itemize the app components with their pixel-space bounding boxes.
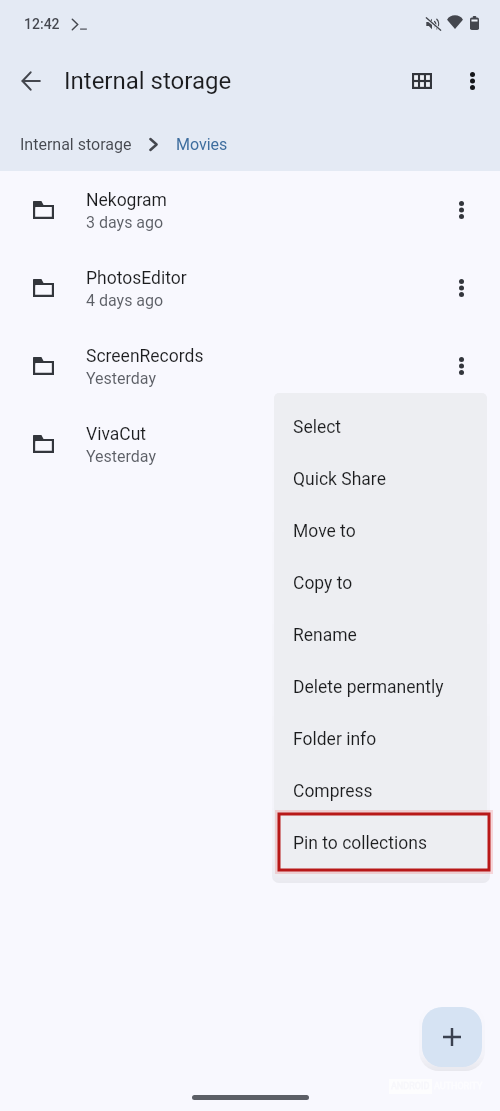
button[interactable]: Internal storage: [20, 135, 132, 154]
button[interactable]: Movies: [176, 135, 228, 154]
staticText: ScreenRecords: [86, 346, 204, 367]
button[interactable]: PhotosEditor: [0, 249, 500, 327]
staticText: 3 days ago: [86, 213, 164, 232]
button[interactable]: Add: [422, 1007, 482, 1067]
staticText: Compress: [293, 781, 373, 802]
button[interactable]: Copy to: [274, 557, 487, 609]
staticText: Quick Share: [293, 469, 386, 490]
staticText: VivaCut: [86, 424, 147, 445]
button[interactable]: Rename: [274, 609, 487, 661]
staticText: Delete permanently: [293, 677, 444, 698]
staticText: Rename: [293, 625, 357, 646]
button[interactable]: More options: [438, 187, 484, 233]
button[interactable]: Compress: [274, 765, 487, 817]
staticText: Yesterday: [86, 369, 157, 388]
staticText: Nekogram: [86, 190, 167, 211]
button[interactable]: Move to: [274, 505, 487, 557]
staticText: Internal storage: [64, 67, 232, 95]
staticText: 4 days ago: [86, 291, 164, 310]
staticText: Internal storage: [20, 135, 132, 154]
button[interactable]: Select: [274, 401, 487, 453]
staticText: PhotosEditor: [86, 268, 187, 289]
staticText: Movies: [176, 135, 228, 154]
button[interactable]: VivaCut: [0, 405, 500, 483]
staticText: 12:42: [24, 16, 60, 32]
staticText: Pin to collections: [293, 833, 427, 854]
button[interactable]: ScreenRecords: [0, 327, 500, 405]
button[interactable]: More options: [449, 58, 495, 104]
staticText: Folder info: [293, 729, 377, 750]
staticText: Select: [293, 417, 342, 438]
button[interactable]: Delete permanently: [274, 661, 487, 713]
staticText: Yesterday: [86, 447, 157, 466]
button[interactable]: Folder info: [274, 713, 487, 765]
button[interactable]: Quick Share: [274, 453, 487, 505]
button[interactable]: Navigate up: [7, 57, 55, 105]
button[interactable]: More options: [438, 343, 484, 389]
button[interactable]: Grid view: [399, 58, 445, 104]
staticText: Copy to: [293, 573, 353, 594]
button[interactable]: Pin to collections: [274, 817, 487, 869]
button[interactable]: More options: [438, 265, 484, 311]
staticText: Move to: [293, 521, 356, 542]
button[interactable]: Nekogram: [0, 171, 500, 249]
